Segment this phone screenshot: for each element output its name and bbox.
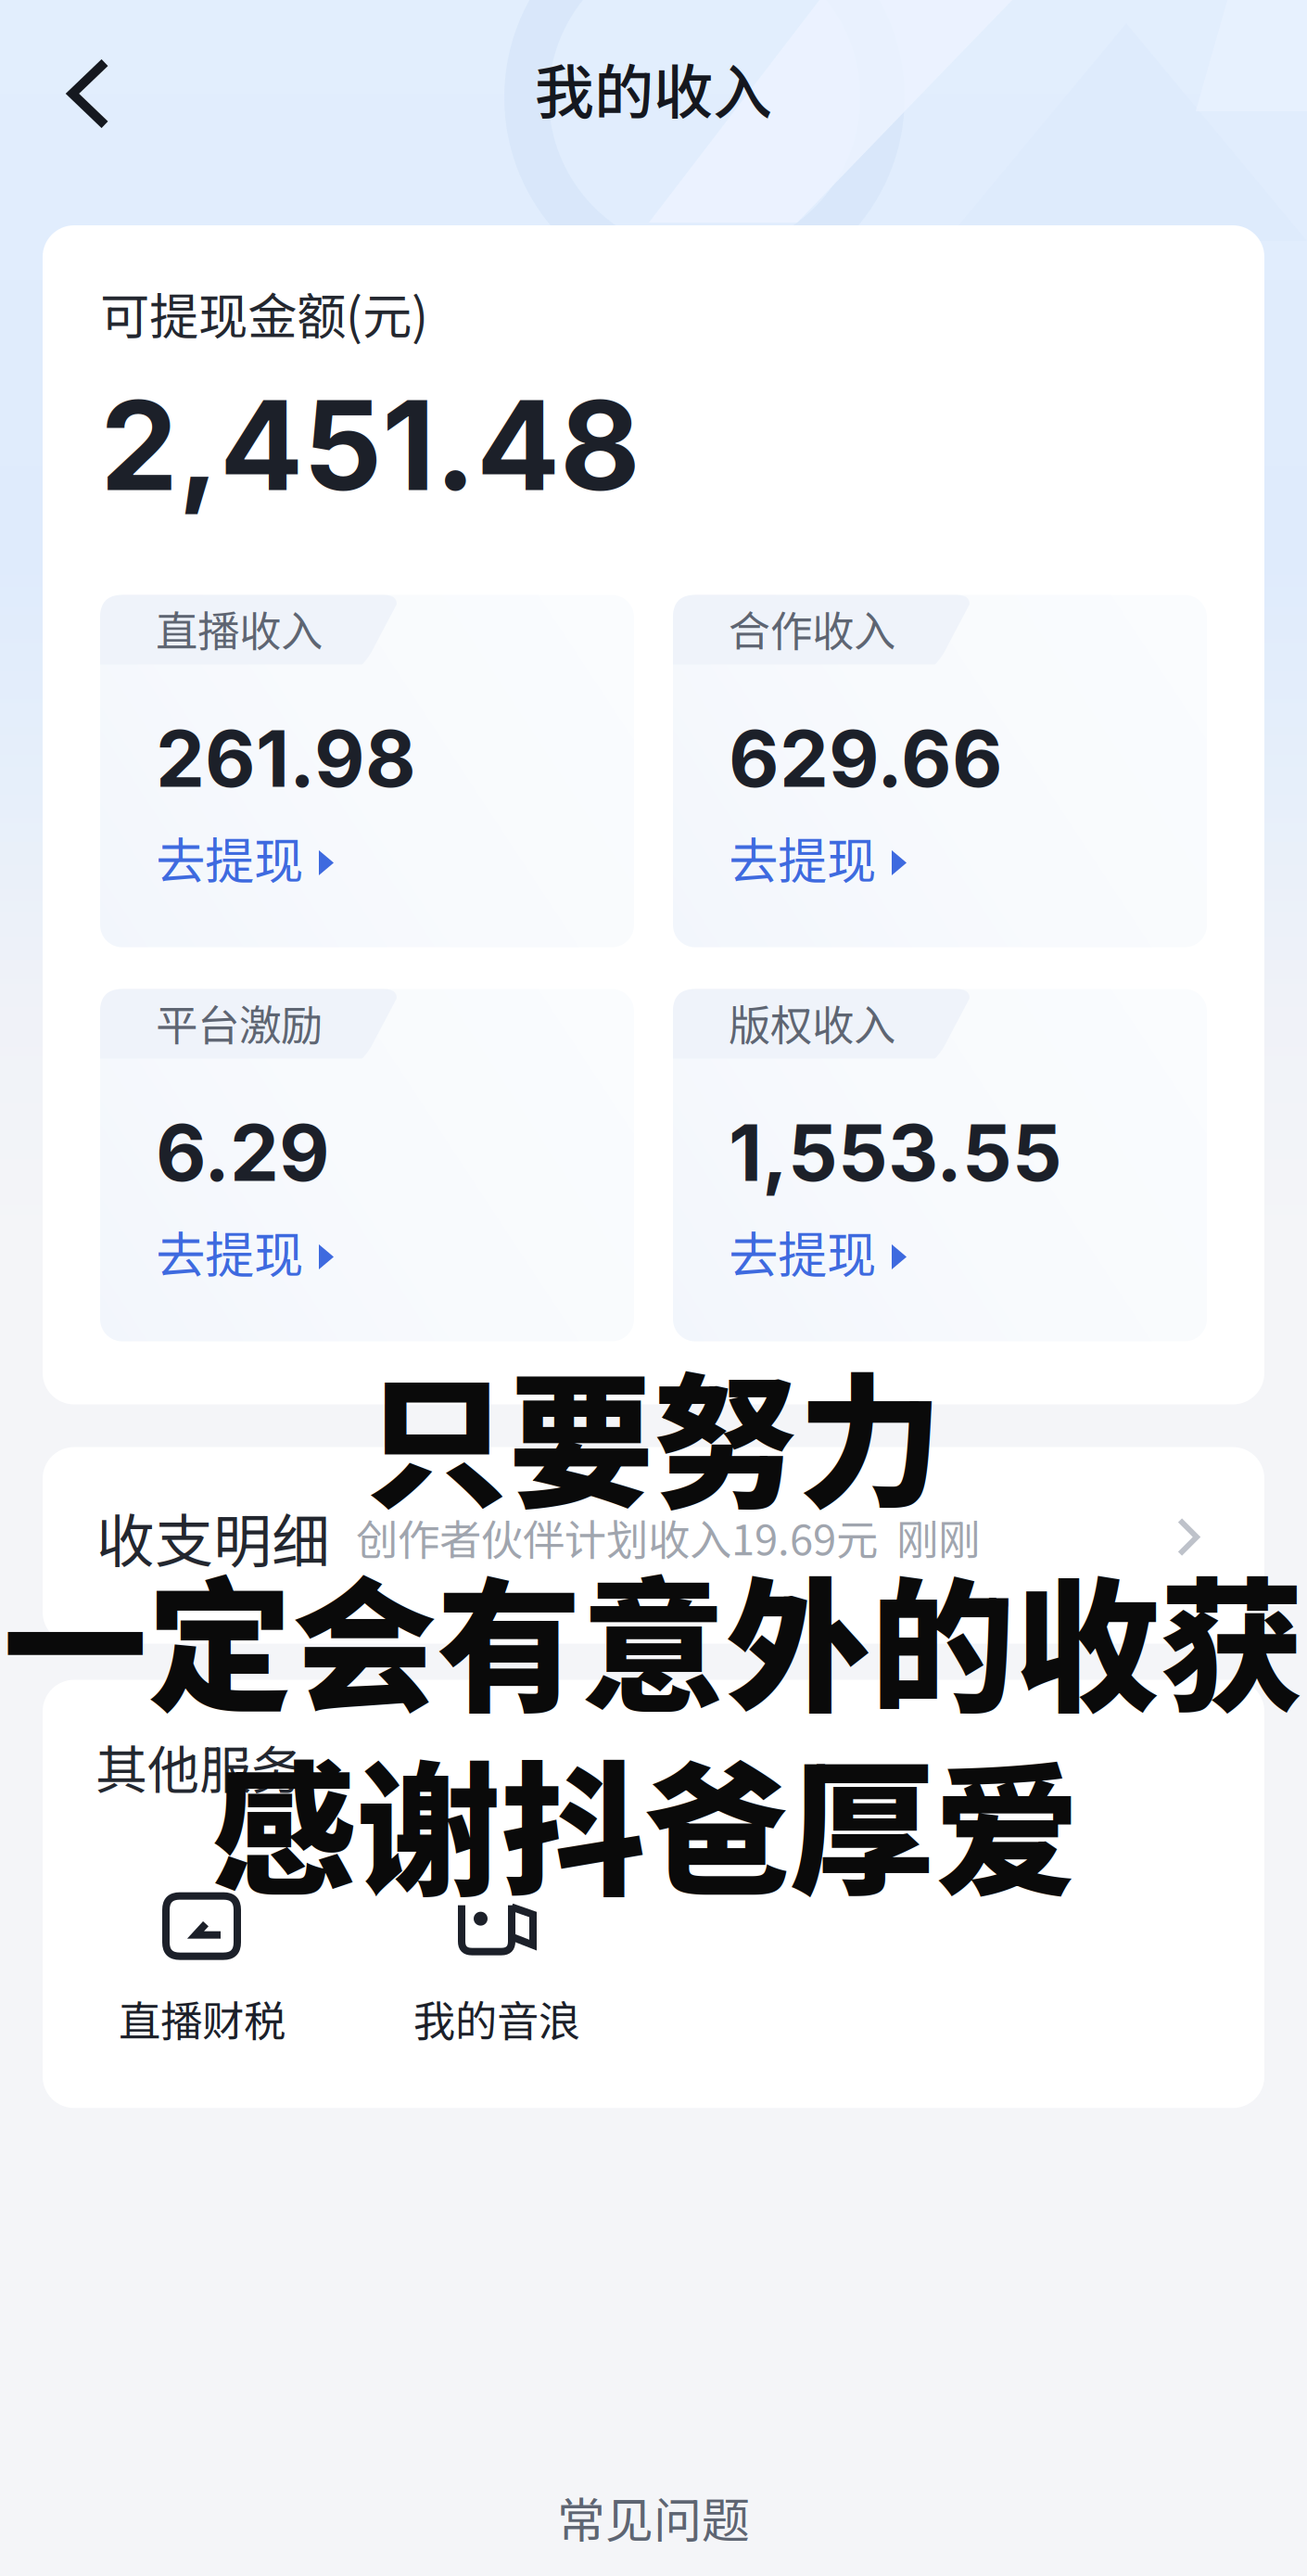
staticText: 1,553.55 xyxy=(729,1106,1062,1200)
staticText: 去提现 xyxy=(156,1215,303,1287)
staticText: 只要努力 xyxy=(364,1328,943,1537)
button[interactable]: 平台激励 xyxy=(100,989,634,1341)
button[interactable]: 常见问题 xyxy=(520,2462,787,2572)
staticText: 去提现 xyxy=(729,821,876,893)
staticText: 直播收入 xyxy=(156,598,323,659)
staticText: 合作收入 xyxy=(729,598,895,659)
staticText: 去提现 xyxy=(156,821,303,893)
button[interactable]: 返回 xyxy=(0,28,146,148)
staticText: 261.98 xyxy=(156,711,416,806)
staticText: 平台激励 xyxy=(156,992,323,1053)
button[interactable]: 合作收入 xyxy=(673,595,1207,947)
staticText: 收支明细 xyxy=(96,1495,330,1579)
staticText: 可提现金额(元) xyxy=(100,277,428,349)
staticText: 我的收入 xyxy=(535,45,772,131)
staticText: 6.29 xyxy=(156,1106,330,1200)
staticText: 感谢抖爸厚爱 xyxy=(211,1715,1079,1925)
staticText: 常见问题 xyxy=(557,2482,750,2552)
staticText: 我的音浪 xyxy=(413,1988,580,2049)
staticText: 629.66 xyxy=(729,711,1003,806)
button[interactable]: 收支明细 xyxy=(43,1447,1264,1644)
staticText: 创作者伙伴计划收入19.69元 刚刚 xyxy=(356,1507,980,1567)
staticText: 直播财税 xyxy=(119,1988,286,2049)
staticText: 一定会有意外的收获 xyxy=(3,1532,1304,1741)
button[interactable]: 直播收入 xyxy=(100,595,634,947)
button[interactable]: 我的音浪 xyxy=(404,1894,590,2049)
staticText: 其他服务 xyxy=(95,1729,303,1804)
button[interactable]: 版权收入 xyxy=(673,989,1207,1341)
staticText: 去提现 xyxy=(729,1215,876,1287)
staticText: 2,451.48 xyxy=(100,370,641,520)
staticText: 版权收入 xyxy=(729,992,895,1053)
button[interactable]: 直播财税 xyxy=(109,1894,295,2049)
